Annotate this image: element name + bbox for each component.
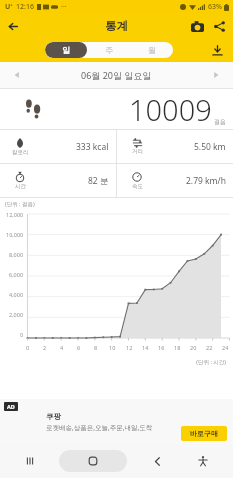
staticText: 바로구매 [190, 429, 218, 438]
staticText: 속도 [132, 183, 143, 190]
staticText: 14 [142, 344, 149, 351]
button[interactable]: Next day [207, 66, 225, 84]
button[interactable]: Recent apps [13, 444, 47, 478]
staticText: 4 [60, 344, 64, 351]
button[interactable]: 일 [45, 42, 87, 58]
staticText: 쿠팡 [46, 412, 61, 421]
button[interactable]: 시간 [0, 164, 116, 197]
staticText: 칼로리 [12, 149, 29, 156]
staticText: 6,000 [9, 271, 24, 278]
button[interactable]: 월 [130, 42, 173, 58]
staticText: 12:16 [16, 2, 34, 12]
staticText: 로켓배송,상품은,오늘,주문,내일,도착 [46, 423, 153, 432]
staticText: 24 [222, 344, 229, 351]
staticText: 4,000 [9, 291, 24, 298]
staticText: 10,000 [6, 231, 24, 238]
staticText: 18 [174, 344, 181, 351]
staticText: 2,000 [9, 311, 24, 318]
staticText: 82 분 [88, 175, 109, 187]
staticText: 22 [206, 344, 213, 351]
staticText: 주 [105, 45, 113, 55]
button[interactable]: Home [59, 450, 127, 472]
button[interactable]: Download [207, 40, 227, 60]
button[interactable]: 속도 [117, 164, 233, 197]
button[interactable]: Camera [186, 15, 208, 37]
staticText: ··· [61, 2, 67, 12]
staticText: 12,000 [6, 211, 24, 218]
staticText: U⁺ [5, 2, 13, 12]
staticText: 63% [208, 2, 222, 12]
button[interactable]: 주 [87, 42, 130, 58]
staticText: 06월 20일 일요일 [81, 69, 152, 81]
button[interactable]: 거리 [117, 130, 233, 163]
button[interactable]: 칼로리 [0, 130, 116, 163]
staticText: 시간 [15, 183, 26, 190]
staticText: 10 [109, 344, 116, 351]
staticText: 10009 [129, 90, 212, 129]
staticText: 걸음 [214, 118, 226, 126]
staticText: 2 [43, 344, 47, 351]
staticText: 8,000 [9, 251, 24, 258]
staticText: 5.50 km [194, 141, 226, 153]
staticText: AD [7, 403, 15, 410]
staticText: 통계 [105, 19, 128, 33]
staticText: 거리 [132, 148, 143, 155]
staticText: (단위 : 걸음) [5, 200, 35, 208]
staticText: 6 [77, 344, 81, 351]
staticText: 0 [20, 331, 24, 338]
staticText: 8 [94, 344, 98, 351]
button[interactable]: Previous day [8, 66, 26, 84]
staticText: 0 [26, 344, 30, 351]
staticText: 12 [126, 344, 133, 351]
staticText: 일 [62, 45, 70, 55]
button[interactable]: Back [140, 444, 174, 478]
button[interactable]: 바로구매 [181, 426, 227, 441]
staticText: 2.79 km/h [186, 175, 226, 187]
button[interactable]: Back [0, 14, 24, 38]
staticText: (단위 : 시간) [0, 358, 226, 366]
staticText: 333 kcal [76, 141, 109, 153]
staticText: 16 [158, 344, 165, 351]
button[interactable]: Accessibility [186, 444, 220, 478]
button[interactable]: Share [208, 15, 230, 37]
staticText: 20 [190, 344, 197, 351]
staticText: 월 [148, 45, 156, 55]
